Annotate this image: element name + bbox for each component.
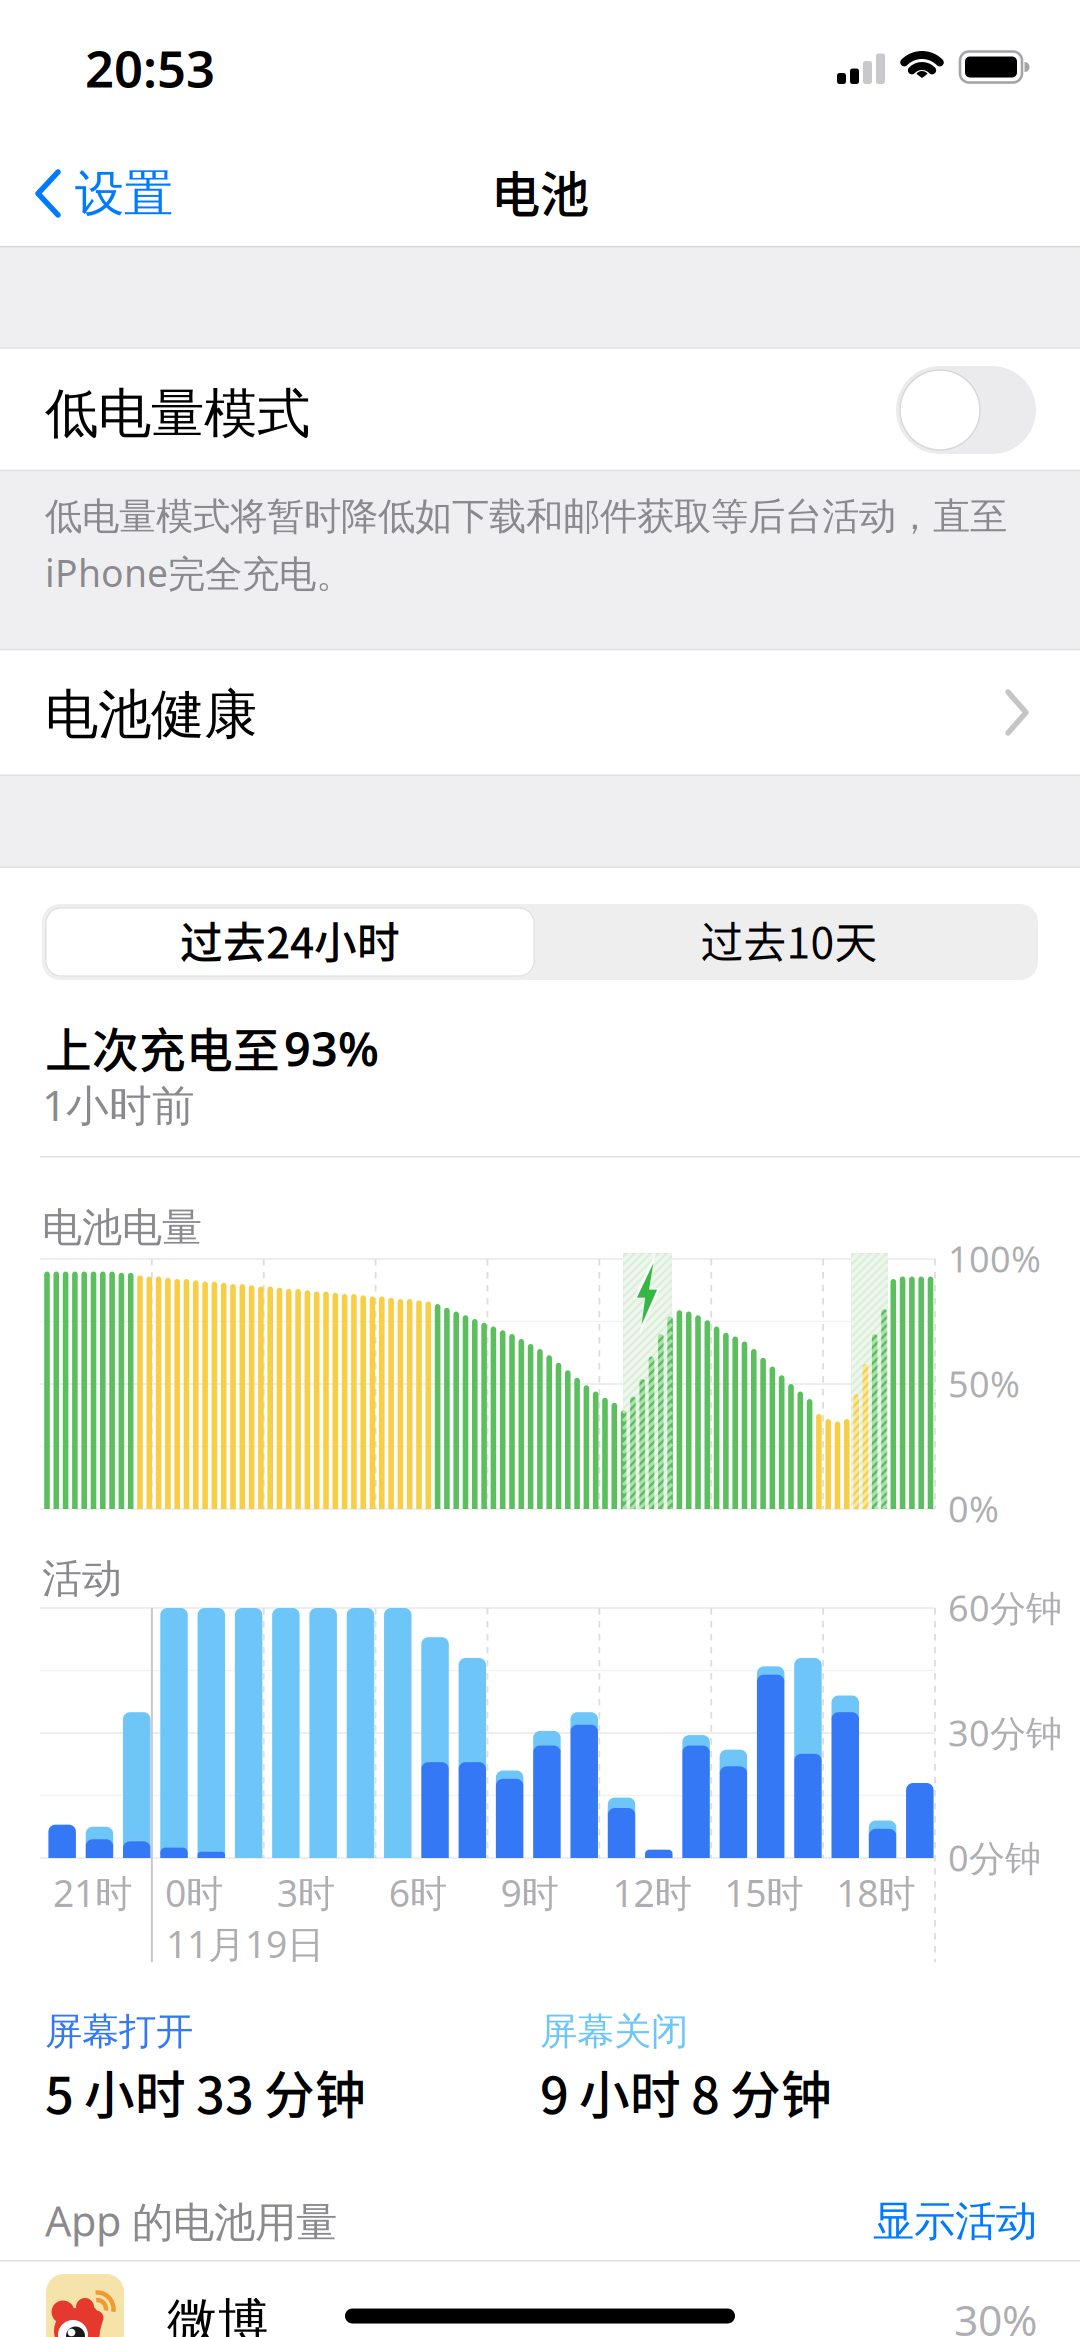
- staticText: 30分钟: [948, 1709, 1062, 1756]
- staticText: 3时: [277, 1868, 335, 1917]
- staticText: 电池电量: [42, 1203, 202, 1252]
- staticText: 电池健康: [45, 682, 257, 747]
- staticText: 9 小时 8 分钟: [540, 2055, 832, 2128]
- staticText: 设置: [75, 163, 173, 224]
- staticText: 0%: [948, 1485, 999, 1532]
- staticText: 屏幕打开: [45, 2009, 193, 2054]
- staticText: 活动: [42, 1554, 122, 1603]
- staticText: 0时: [165, 1868, 223, 1917]
- staticText: 100%: [948, 1235, 1041, 1282]
- staticText: 过去10天: [700, 909, 877, 971]
- staticText: 过去24小时: [180, 909, 400, 971]
- staticText: 12时: [612, 1868, 691, 1917]
- staticText: 60分钟: [948, 1584, 1062, 1631]
- staticText: 5 小时 33 分钟: [45, 2055, 366, 2128]
- staticText: 低电量模式将暂时降低如下载和邮件获取等后台活动，直至: [45, 494, 1007, 539]
- staticText: 18时: [836, 1868, 915, 1917]
- staticText: 50%: [948, 1360, 1020, 1407]
- staticText: 9时: [500, 1868, 558, 1917]
- staticText: 微博: [167, 2292, 269, 2337]
- staticText: App 的电池用量: [45, 2193, 337, 2248]
- staticText: 15时: [724, 1868, 803, 1917]
- staticText: 93%: [284, 1017, 379, 1079]
- staticText: 21时: [53, 1868, 132, 1917]
- staticText: 20:53: [85, 34, 215, 102]
- staticText: 屏幕关闭: [540, 2009, 688, 2054]
- staticText: 低电量模式: [45, 381, 310, 446]
- staticText: iPhone完全充电。: [45, 548, 353, 598]
- staticText: 30%: [954, 2291, 1037, 2337]
- staticText: 显示活动: [873, 2196, 1037, 2247]
- staticText: 0分钟: [948, 1834, 1041, 1881]
- staticText: 1小时前: [42, 1076, 195, 1133]
- staticText: 6时: [389, 1868, 447, 1917]
- staticText: 上次充电至: [45, 1013, 280, 1081]
- staticText: 11月19日: [166, 1919, 324, 1968]
- staticText: 电池: [491, 155, 589, 227]
